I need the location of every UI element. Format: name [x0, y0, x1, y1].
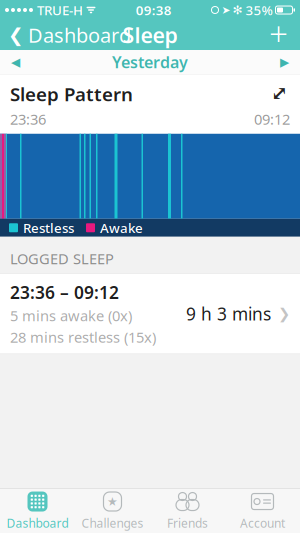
staticText: LOGGED SLEEP [10, 249, 114, 268]
button[interactable]: 23:36 – 09:12 [0, 274, 300, 354]
button[interactable]: Next day [269, 49, 300, 75]
staticText: + [269, 11, 288, 55]
staticText: ➤ [221, 4, 230, 16]
staticText: Sleep [122, 21, 177, 49]
staticText: 23:36 [10, 109, 46, 129]
button[interactable]: ❮ [0, 16, 137, 54]
staticText: ◀ [11, 55, 20, 69]
button[interactable]: Dashboard [0, 486, 75, 533]
staticText: ✻ [232, 3, 242, 17]
staticText: Awake [100, 219, 143, 237]
staticText: Challenges [81, 515, 143, 531]
staticText: ⤢ [271, 81, 288, 104]
staticText: Sleep Pattern [10, 81, 133, 106]
staticText: Dashboard [6, 515, 68, 531]
staticText: ❯ [278, 305, 290, 322]
staticText: 9 h 3 mins [186, 302, 271, 325]
staticText: TRUE-H [37, 1, 83, 19]
staticText: Yesterday [112, 51, 188, 73]
staticText: ❮ [8, 24, 24, 46]
staticText: 23:36 – 09:12 [10, 281, 119, 304]
staticText: 5 mins awake (0x) [10, 306, 132, 325]
staticText: Account [240, 515, 285, 531]
staticText: 28 mins restless (15x) [10, 327, 156, 347]
staticText: ★ [107, 495, 118, 508]
button[interactable]: Add [257, 11, 300, 59]
button[interactable]: Previous day [0, 49, 31, 75]
staticText: 09:12 [254, 109, 290, 129]
button[interactable]: ★ [75, 486, 150, 533]
staticText: ▶ [280, 55, 289, 69]
staticText: 35% [245, 1, 272, 19]
staticText: Dashboard [28, 22, 131, 48]
staticText: Restless [23, 219, 74, 237]
staticText: Friends [167, 515, 208, 531]
button[interactable]: Expand chart [269, 81, 290, 104]
button[interactable]: Friends [150, 486, 225, 533]
button[interactable]: Account [225, 486, 300, 533]
staticText: 09:38 [136, 1, 172, 19]
